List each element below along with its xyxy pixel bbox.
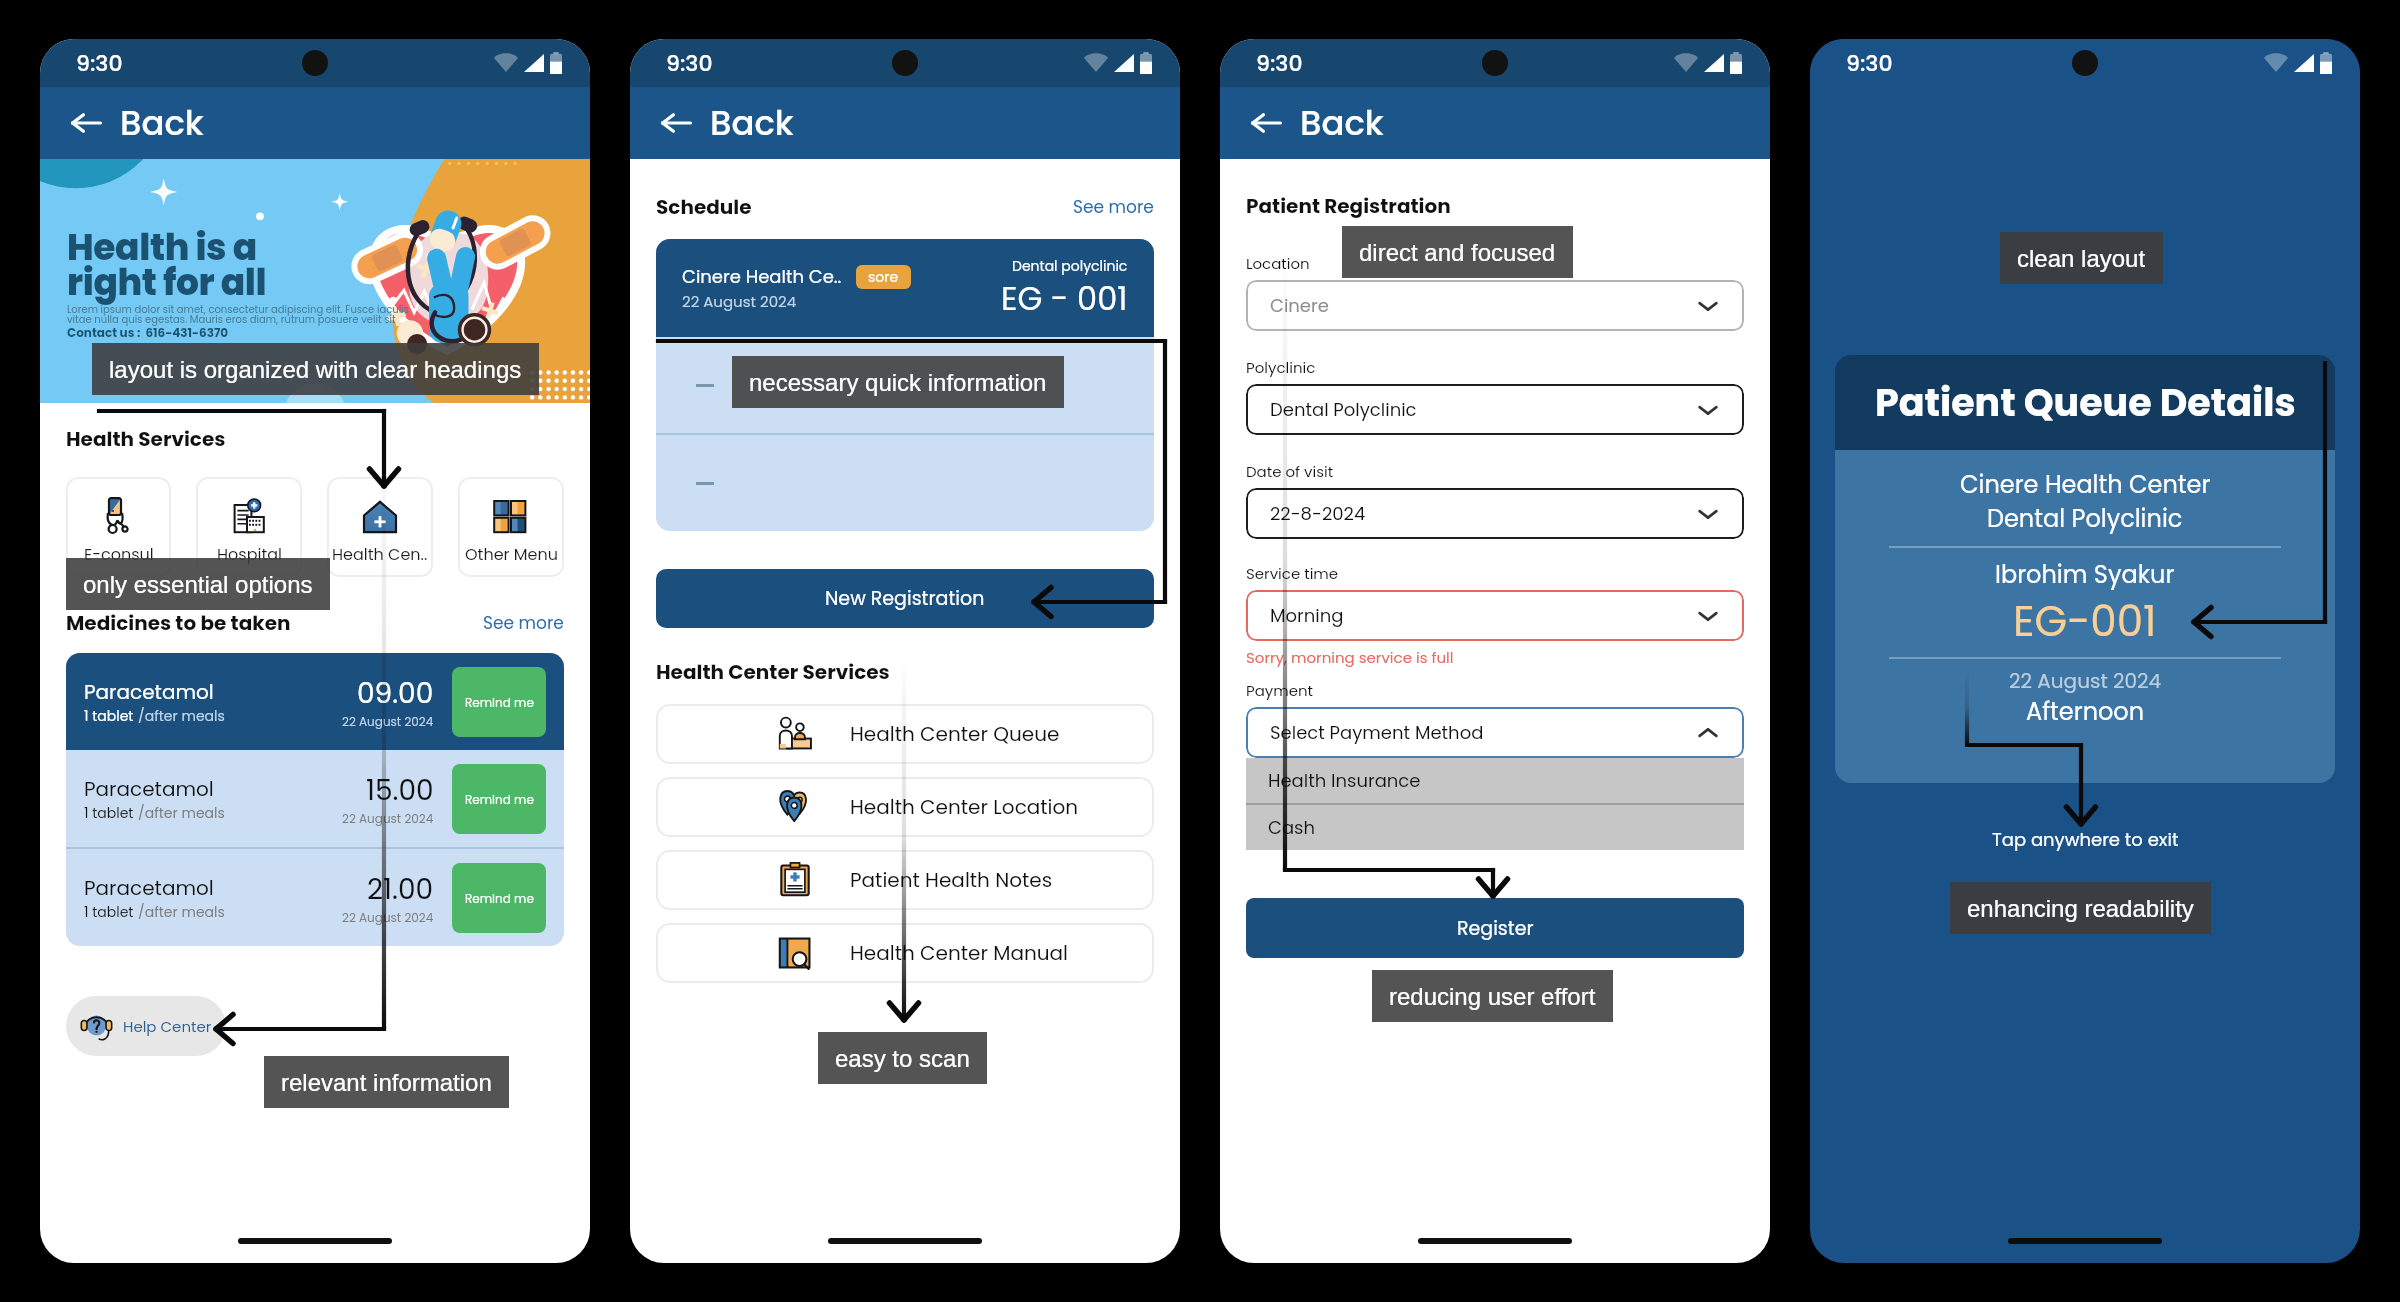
staticText: 1 tablet [84, 706, 138, 726]
button[interactable]: Back [630, 87, 1180, 159]
staticText: EG - 001 [1001, 276, 1128, 321]
staticText: Register [1457, 915, 1534, 942]
staticText: /after meals [138, 803, 225, 823]
staticText: Help Center [123, 1016, 212, 1037]
button[interactable]: Paracetamol [66, 653, 564, 750]
staticText: Patient Registration [1246, 192, 1451, 220]
staticText: 9:30 [1256, 48, 1303, 79]
button[interactable]: E-consul [66, 477, 171, 577]
button[interactable]: Back [1220, 87, 1770, 159]
staticText: Patient Health Notes [850, 866, 1053, 894]
button[interactable]: Select Payment Method [1246, 707, 1744, 758]
button[interactable]: Register [1246, 898, 1744, 958]
button[interactable]: Remind me [452, 764, 546, 834]
button[interactable]: Morning [1246, 590, 1744, 641]
staticText: See more [1073, 195, 1154, 219]
staticText: Tap anywhere to exit [1992, 827, 2179, 852]
button[interactable]: Paracetamol [66, 849, 564, 946]
staticText: Service time [1246, 563, 1339, 584]
staticText: 22 August 2024 [682, 291, 797, 312]
button[interactable]: Hospital [196, 477, 302, 577]
button[interactable]: Dental Polyclinic [1246, 384, 1744, 435]
button[interactable]: See more [1073, 195, 1154, 219]
staticText: sore [868, 267, 899, 287]
staticText: Dental Polyclinic [1987, 502, 2183, 536]
staticText: 21.00 [367, 870, 434, 909]
button[interactable]: Back [40, 87, 590, 159]
staticText: 22 August 2024 [342, 909, 434, 926]
staticText: Back [1300, 99, 1384, 147]
staticText: Morning [1270, 603, 1344, 628]
other: Back [70, 107, 102, 139]
staticText: E-consul [84, 543, 154, 565]
staticText: Schedule [656, 193, 752, 221]
staticText: Medicines to be taken [66, 609, 291, 637]
staticText: Paracetamol [84, 775, 214, 803]
staticText: Remind me [465, 890, 534, 907]
staticText: Lorem ipsum dolor sit amet, consectetur … [67, 302, 409, 326]
staticText: Select Payment Method [1270, 720, 1484, 745]
staticText: Cinere Health Ce.. [682, 264, 842, 289]
staticText: Patient Queue Details [1875, 376, 2296, 429]
staticText: See more [483, 611, 564, 635]
staticText: easy to scan [835, 1045, 970, 1072]
button[interactable]: Help Center [66, 996, 226, 1056]
staticText: Ibrohim Syakur [1995, 558, 2175, 592]
staticText: 9:30 [1846, 48, 1893, 79]
staticText: clean layout [2017, 245, 2146, 272]
staticText: only essential options [83, 571, 313, 598]
button[interactable]: Other Menu [458, 477, 564, 577]
staticText: 1 tablet [84, 902, 138, 922]
staticText: 9:30 [76, 48, 123, 79]
button[interactable]: 22-8-2024 [1246, 488, 1744, 539]
staticText: Paracetamol [84, 874, 214, 902]
staticText: enhancing readability [1967, 895, 2194, 922]
button[interactable]: New Registration [656, 569, 1154, 628]
staticText: 09.00 [357, 674, 434, 713]
staticText: Cash [1268, 815, 1315, 840]
staticText: Health Center Location [850, 793, 1079, 821]
button[interactable]: Health Cen.. [327, 477, 433, 577]
button[interactable]: Tap anywhere to exit [1835, 827, 2335, 852]
staticText: Afternoon [2026, 695, 2145, 729]
staticText: Health Insurance [1268, 768, 1421, 793]
staticText: /after meals [138, 706, 225, 726]
staticText: necessary quick information [749, 369, 1047, 396]
staticText: Remind me [465, 694, 534, 711]
staticText: Cinere Health Center [1960, 468, 2211, 502]
staticText: Health Center Services [656, 658, 890, 686]
staticText: 22 August 2024 [342, 810, 434, 827]
button[interactable]: Cash [1246, 805, 1744, 850]
staticText: 1 tablet [84, 803, 138, 823]
staticText: 15.00 [366, 771, 434, 810]
button[interactable]: Remind me [452, 667, 546, 737]
button[interactable]: Cinere Health Ce.. [656, 239, 1154, 337]
button[interactable]: Health Center Manual [656, 923, 1154, 983]
button[interactable]: See more [483, 611, 564, 635]
staticText: Polyclinic [1246, 357, 1316, 378]
button[interactable]: Paracetamol [66, 750, 564, 847]
button[interactable]: Health Center Location [656, 777, 1154, 837]
button[interactable]: Patient Health Notes [656, 850, 1154, 910]
staticText: Health is a right for all [67, 222, 267, 307]
staticText: layout is organized with clear headings [109, 356, 522, 383]
staticText: 9:30 [666, 48, 713, 79]
button[interactable]: Cinere [1246, 280, 1744, 331]
staticText: Paracetamol [84, 678, 214, 706]
staticText: Health Center Manual [850, 939, 1068, 967]
staticText: Location [1246, 253, 1310, 274]
staticText: New Registration [825, 585, 985, 612]
staticText: Dental Polyclinic [1270, 397, 1417, 422]
staticText: 22 August 2024 [2009, 667, 2162, 695]
staticText: Contact us : 616-431-6370 [67, 324, 229, 341]
button[interactable]: Health Center Queue [656, 704, 1154, 764]
other: Back [1250, 107, 1282, 139]
button[interactable]: Remind me [452, 863, 546, 933]
staticText: Remind me [465, 791, 534, 808]
staticText: Payment [1246, 680, 1314, 701]
staticText: EG-001 [2013, 592, 2157, 651]
staticText: direct and focused [1359, 239, 1556, 266]
button[interactable]: Health Insurance [1246, 758, 1744, 803]
other: Back [660, 107, 692, 139]
staticText: Date of visit [1246, 461, 1334, 482]
